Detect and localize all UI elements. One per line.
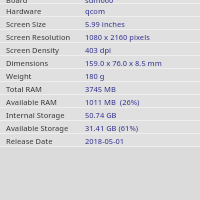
- staticText: 1080 x 2160 pixels: [85, 32, 150, 42]
- staticText: Release Date: [6, 136, 53, 146]
- staticText: Available RAM: [6, 97, 57, 107]
- staticText: 50.74 GB: [85, 110, 117, 120]
- button[interactable]: Internal Storage: [0, 108, 200, 121]
- staticText: Internal Storage: [6, 110, 65, 120]
- staticText: sdm660: [85, 0, 114, 5]
- staticText: qcom: [85, 6, 106, 16]
- staticText: Weight: [6, 71, 32, 81]
- staticText: 159.0 x 76.0 x 8.5 mm: [85, 58, 162, 68]
- staticText: Board: [6, 0, 28, 5]
- staticText: Available Storage: [6, 123, 69, 133]
- button[interactable]: Dimensions: [0, 56, 200, 69]
- button[interactable]: Total RAM: [0, 82, 200, 95]
- staticText: 31.41 GB (61%): [85, 123, 139, 133]
- staticText: Screen Density: [6, 45, 60, 55]
- button[interactable]: Board: [0, 0, 200, 4]
- button[interactable]: Available Storage: [0, 121, 200, 134]
- button[interactable]: Screen Resolution: [0, 30, 200, 43]
- staticText: 1011 MB (26%): [85, 97, 140, 107]
- button[interactable]: Available RAM: [0, 95, 200, 108]
- button[interactable]: Screen Size: [0, 17, 200, 30]
- staticText: 180 g: [85, 71, 105, 81]
- staticText: Screen Size: [6, 19, 47, 29]
- staticText: Total RAM: [6, 84, 42, 94]
- staticText: 5.99 inches: [85, 19, 125, 29]
- staticText: 3745 MB: [85, 84, 116, 94]
- button[interactable]: Release Date: [0, 134, 200, 147]
- staticText: 2018-05-01: [85, 136, 125, 146]
- staticText: Dimensions: [6, 58, 49, 68]
- button[interactable]: Hardware: [0, 4, 200, 17]
- button[interactable]: Weight: [0, 69, 200, 82]
- staticText: Screen Resolution: [6, 32, 71, 42]
- button[interactable]: Screen Density: [0, 43, 200, 56]
- staticText: Hardware: [6, 6, 42, 16]
- staticText: 403 dpi: [85, 45, 112, 55]
